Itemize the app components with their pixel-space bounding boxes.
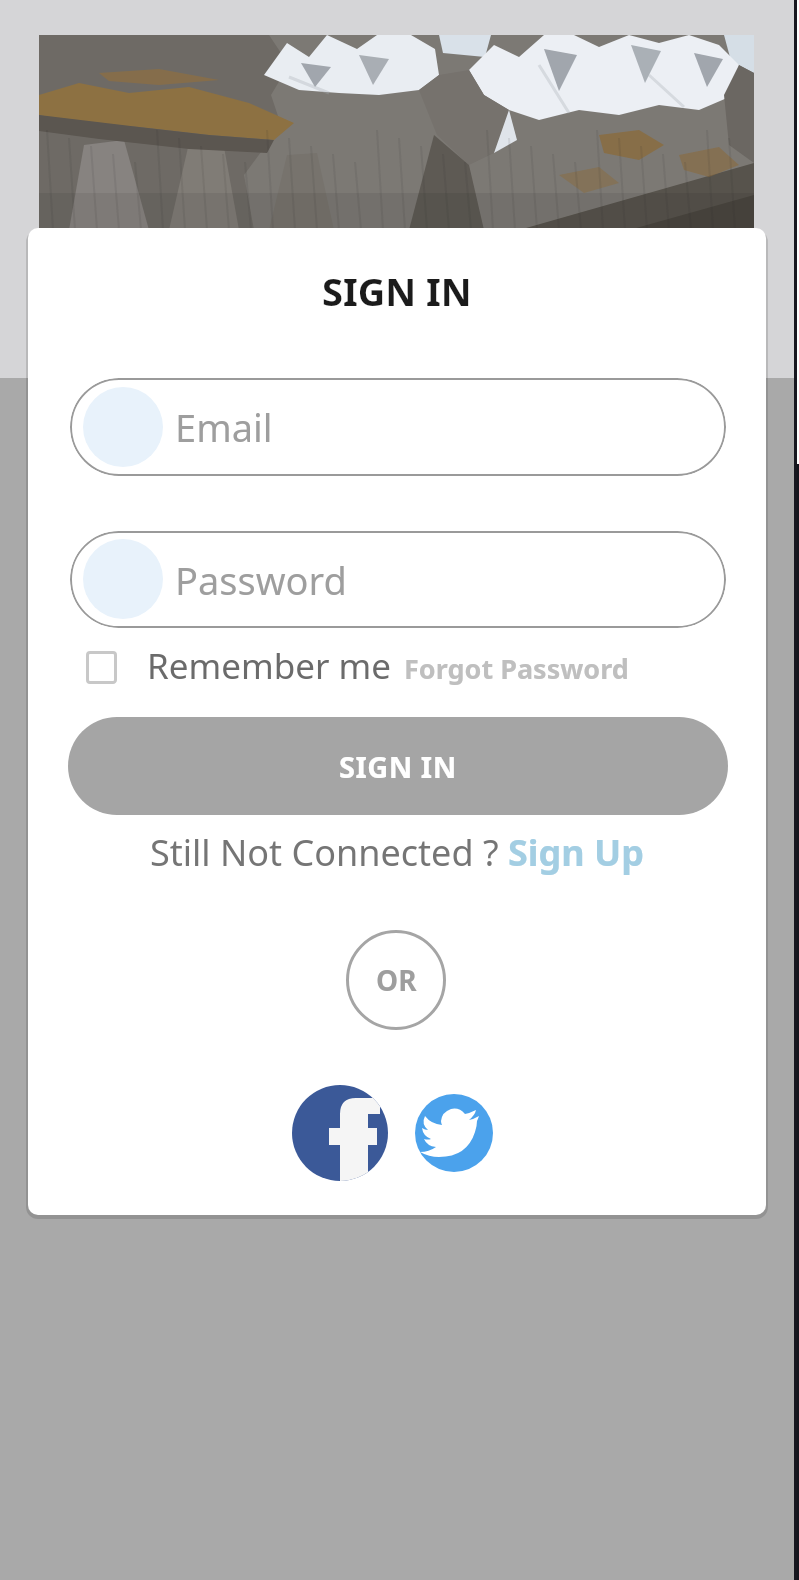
button[interactable] (415, 1094, 493, 1172)
button[interactable]: Remember me (147, 642, 391, 690)
staticText: SIGN IN (322, 265, 472, 317)
staticText: Remember me (147, 642, 391, 690)
button[interactable] (292, 1085, 388, 1181)
button[interactable]: Email (70, 378, 726, 476)
button[interactable]: SIGN IN (68, 717, 728, 815)
staticText: Email (175, 401, 273, 453)
staticText: OR (376, 961, 417, 999)
staticText: Forgot Password (404, 650, 629, 687)
button[interactable] (86, 651, 117, 684)
staticText: Password (175, 554, 347, 606)
button[interactable]: Forgot Password (404, 650, 629, 687)
button[interactable]: Sign Up (508, 828, 645, 877)
staticText: Sign Up (508, 828, 645, 877)
button[interactable]: Password (70, 531, 726, 628)
staticText: SIGN IN (339, 747, 457, 786)
staticText: Still Not Connected ? (150, 828, 508, 877)
